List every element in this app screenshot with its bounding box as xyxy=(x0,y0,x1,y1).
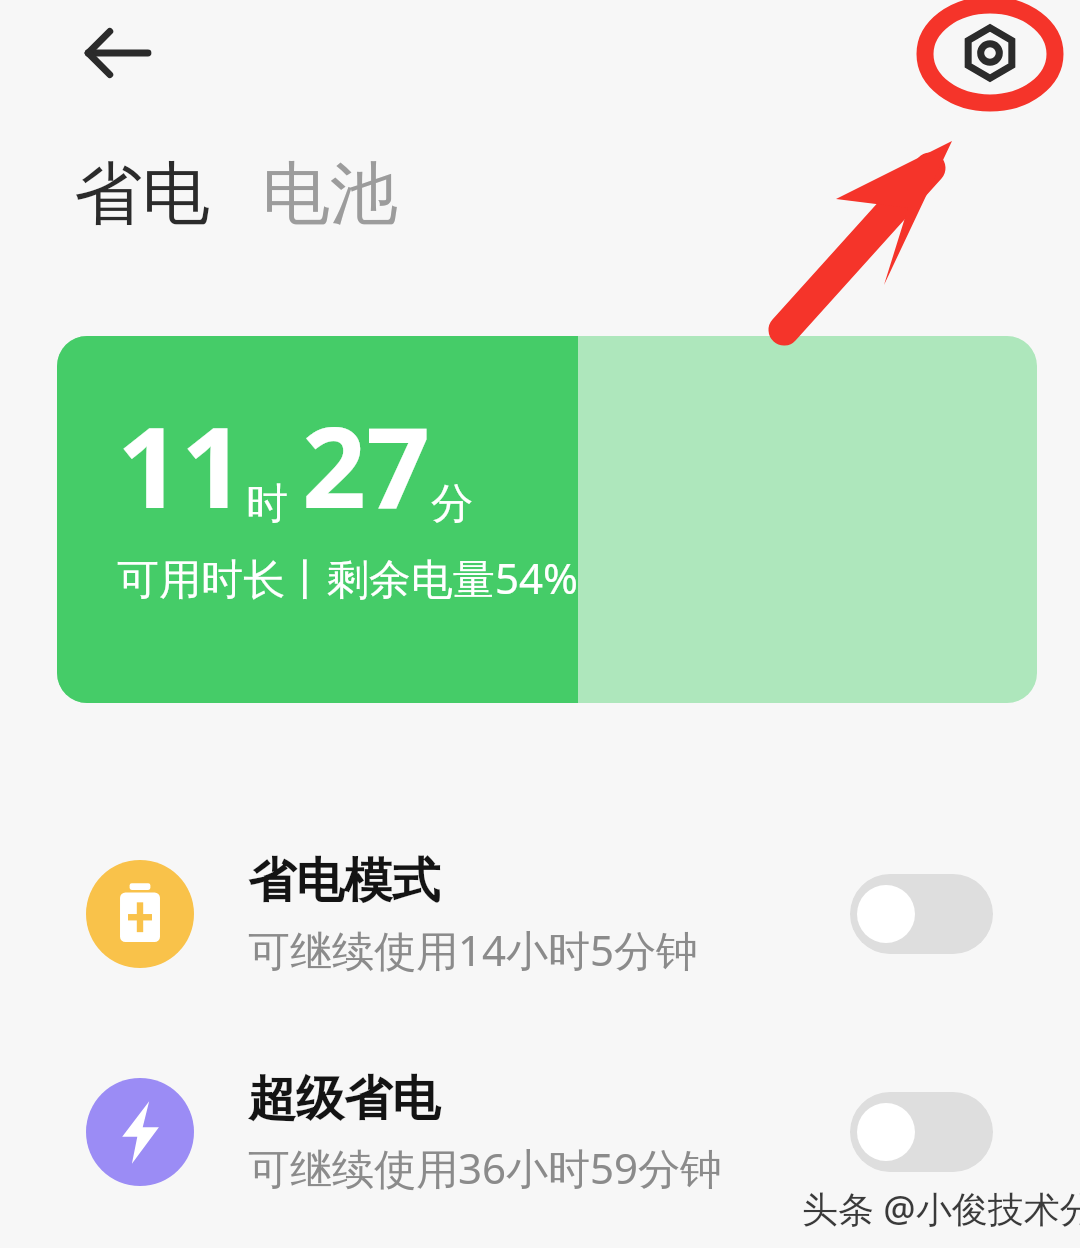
staticText: 超级省电 xyxy=(248,1069,440,1129)
staticText: 省电模式 xyxy=(248,851,440,911)
staticText: 分 xyxy=(431,478,473,531)
staticText: 电池 xyxy=(262,152,398,238)
button[interactable]: 省电 xyxy=(74,152,210,238)
button[interactable]: Toggle 超级省电 xyxy=(850,1092,993,1172)
staticText: 可用时长丨剩余电量54% xyxy=(117,549,578,606)
staticText: 时 xyxy=(246,478,288,531)
button[interactable]: Back xyxy=(69,5,165,101)
staticText: 27 xyxy=(302,388,431,541)
staticText: 头条 @小俊技术分享 xyxy=(802,1184,1080,1233)
button[interactable]: 省电模式 xyxy=(0,836,1080,992)
staticText: 可继续使用36小时59分钟 xyxy=(248,1139,723,1196)
button[interactable]: 电池 xyxy=(262,152,398,238)
staticText: 11 xyxy=(117,388,246,541)
staticText: 可继续使用14小时5分钟 xyxy=(248,921,699,978)
button[interactable]: Settings xyxy=(942,5,1038,101)
button[interactable]: 超级省电 xyxy=(0,1054,1080,1210)
button[interactable]: Toggle 省电模式 xyxy=(850,874,993,954)
button[interactable]: 11 xyxy=(57,336,1037,703)
staticText: 省电 xyxy=(74,152,210,238)
